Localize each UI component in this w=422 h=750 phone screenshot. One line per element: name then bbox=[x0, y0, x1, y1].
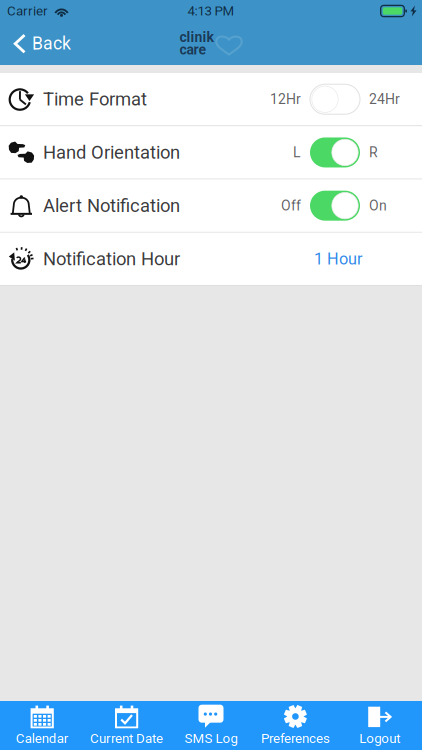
staticText: care bbox=[179, 41, 206, 58]
staticText: 24Hr bbox=[369, 91, 400, 107]
staticText: Notification Hour bbox=[43, 248, 180, 270]
button[interactable]: Time Format bbox=[0, 73, 422, 125]
staticText: R bbox=[369, 144, 378, 161]
button[interactable]: Calendar bbox=[0, 701, 84, 750]
staticText: SMS Log bbox=[184, 731, 237, 746]
staticText: Logout bbox=[359, 731, 400, 746]
staticText: clinik bbox=[179, 29, 213, 45]
staticText: Carrier bbox=[7, 3, 48, 19]
button[interactable]: Logout bbox=[338, 701, 422, 750]
staticText: L bbox=[293, 144, 301, 161]
staticText: Preferences bbox=[261, 731, 330, 746]
staticText: Off bbox=[281, 197, 301, 214]
staticText: Time Format bbox=[43, 88, 147, 110]
staticText: 1 Hour bbox=[314, 249, 363, 268]
staticText: 4:13 PM bbox=[187, 3, 234, 19]
staticText: Alert Notification bbox=[43, 195, 180, 216]
staticText: Current Date bbox=[90, 731, 163, 746]
button[interactable]: Alert Notification bbox=[0, 179, 422, 232]
staticText: 12Hr bbox=[270, 91, 301, 107]
button[interactable]: SMS Log bbox=[169, 701, 253, 750]
staticText: Back bbox=[32, 33, 71, 54]
button[interactable]: Back bbox=[0, 27, 71, 60]
staticText: Hand Orientation bbox=[43, 142, 180, 163]
staticText: On bbox=[369, 197, 387, 214]
button[interactable]: Current Date bbox=[84, 701, 169, 750]
staticText: Calendar bbox=[16, 731, 69, 746]
button[interactable]: Notification Hour bbox=[0, 233, 422, 285]
button[interactable]: Hand Orientation bbox=[0, 126, 422, 179]
button[interactable]: Preferences bbox=[253, 701, 338, 750]
